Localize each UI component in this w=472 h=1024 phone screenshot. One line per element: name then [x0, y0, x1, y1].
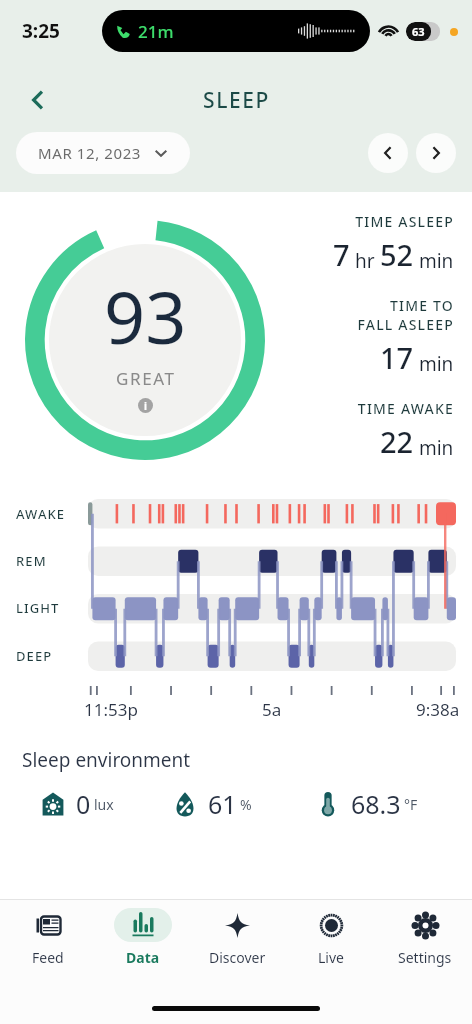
staticText: AWAKE [16, 505, 66, 523]
staticText: 61 [208, 787, 237, 821]
staticText: °F [404, 795, 418, 814]
staticText: Data [126, 948, 160, 967]
button[interactable]: MAR 12, 2023 [16, 132, 190, 174]
staticText: 63 [412, 24, 425, 39]
staticText: 52 [380, 235, 414, 274]
staticText: 22 [380, 422, 414, 461]
button[interactable]: Feed [0, 908, 95, 992]
staticText: TIME TO [389, 296, 454, 315]
staticText: REM [16, 552, 47, 570]
button[interactable]: Next day [416, 133, 456, 173]
staticText: % [240, 795, 252, 814]
button[interactable]: 68.3 [307, 787, 450, 821]
button[interactable]: Previous day [368, 133, 408, 173]
staticText: 93 [104, 267, 187, 365]
staticText: i [144, 399, 147, 413]
button[interactable]: Live [284, 908, 378, 992]
staticText: 5a [262, 698, 282, 721]
staticText: 9:38a [416, 698, 460, 721]
staticText: min [414, 435, 454, 461]
staticText: min [414, 351, 454, 377]
staticText: hr [350, 248, 380, 274]
staticText: Sleep environment [22, 747, 191, 773]
button[interactable]: 61 [164, 787, 307, 821]
staticText: DEEP [16, 647, 53, 665]
staticText: 68.3 [351, 787, 401, 821]
staticText: 0 [76, 787, 91, 821]
button[interactable]: Data [95, 908, 190, 992]
staticText: 17 [380, 338, 414, 377]
staticText: min [414, 248, 454, 274]
button[interactable]: Settings [378, 908, 472, 992]
staticText: Live [318, 948, 344, 967]
staticText: Feed [32, 948, 64, 967]
staticText: 7 [333, 235, 350, 274]
staticText: TIME ASLEEP [355, 212, 454, 231]
staticText: lux [94, 795, 114, 814]
button[interactable]: 0 [22, 787, 164, 821]
staticText: MAR 12, 2023 [38, 143, 142, 163]
staticText: FALL ASLEEP [357, 315, 454, 334]
staticText: Discover [209, 948, 266, 967]
staticText: TIME AWAKE [357, 399, 454, 418]
button[interactable]: Back [16, 78, 60, 122]
staticText: LIGHT [16, 599, 60, 617]
button[interactable]: Discover [190, 908, 284, 992]
staticText: SLEEP [203, 86, 270, 115]
staticText: 11:53p [84, 698, 138, 721]
staticText: 21m [138, 20, 174, 43]
staticText: Settings [398, 948, 452, 967]
staticText: 3:25 [22, 18, 60, 44]
staticText: GREAT [116, 367, 176, 390]
button[interactable]: 93 [49, 244, 241, 436]
